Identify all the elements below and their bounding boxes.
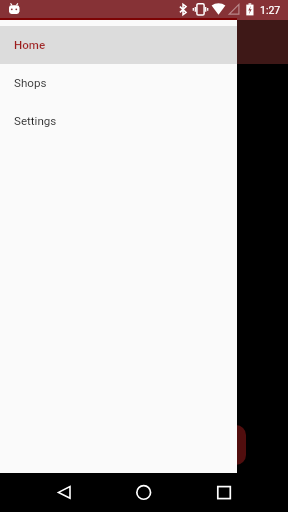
staticText: Shops: [14, 76, 47, 90]
button[interactable]: Back: [48, 473, 80, 512]
button[interactable]: Home: [128, 473, 160, 512]
button[interactable]: Add: [206, 425, 246, 465]
button[interactable]: Recent apps: [208, 473, 240, 512]
staticText: Home: [14, 38, 46, 52]
staticText: 1:27: [260, 4, 281, 16]
button[interactable]: Settings: [0, 102, 237, 140]
button[interactable]: Shops: [0, 64, 237, 102]
staticText: Settings: [14, 114, 57, 128]
button[interactable]: Home: [0, 26, 237, 64]
